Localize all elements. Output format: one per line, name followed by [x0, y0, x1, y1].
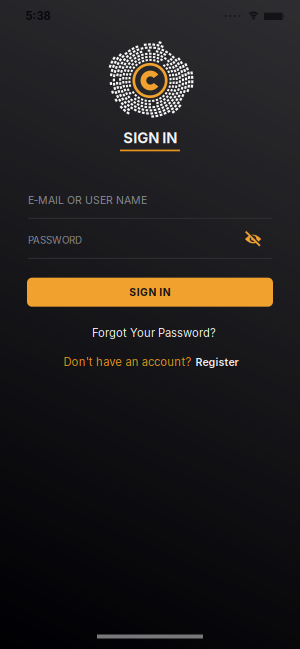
staticText: Don't have an account? — [63, 355, 192, 369]
staticText: PASSWORD — [28, 234, 82, 246]
button[interactable]: SIGN IN — [27, 278, 273, 307]
button[interactable]: PASSWORD — [28, 232, 272, 262]
button[interactable]: Forgot Your Password? — [92, 326, 216, 340]
staticText: E‑MAIL OR USER NAME — [28, 194, 147, 206]
staticText: Register — [195, 355, 238, 368]
staticText: SIGN IN — [123, 129, 177, 147]
button[interactable] — [243, 228, 263, 248]
staticText: 5:38 — [25, 9, 50, 23]
button[interactable]: E‑MAIL OR USER NAME — [28, 192, 272, 222]
staticText: Forgot Your Password? — [92, 326, 216, 340]
button[interactable]: Don't have an account? — [63, 355, 239, 369]
staticText: SIGN IN — [129, 286, 171, 298]
